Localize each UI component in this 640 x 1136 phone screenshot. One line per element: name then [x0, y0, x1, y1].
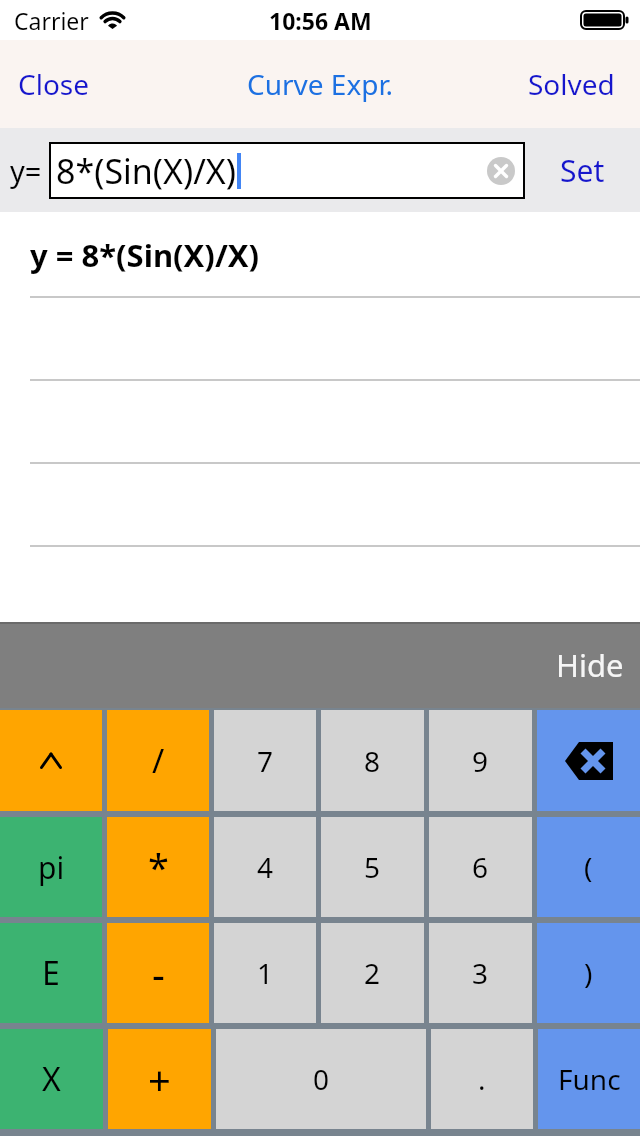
staticText: 4 [257, 848, 274, 886]
button[interactable]: E [0, 923, 102, 1023]
button[interactable]: - [107, 923, 209, 1023]
staticText: E [42, 951, 60, 995]
button[interactable]: pi [0, 817, 102, 917]
staticText: X [42, 1057, 61, 1101]
button[interactable]: Solved [524, 65, 619, 103]
button[interactable]: / [107, 710, 209, 811]
button[interactable]: 9 [429, 710, 532, 811]
button[interactable] [537, 710, 640, 811]
button[interactable]: 6 [429, 817, 532, 917]
staticText: pi [38, 847, 65, 888]
staticText: 5 [364, 848, 381, 886]
staticText: - [152, 946, 165, 1000]
staticText: Set [560, 150, 605, 191]
staticText: + [148, 1052, 171, 1106]
button[interactable]: + [108, 1029, 211, 1129]
button[interactable] [0, 710, 102, 811]
button[interactable]: y = 8*(Sin(X)/X) [0, 212, 640, 297]
button[interactable]: Func [538, 1029, 640, 1129]
button[interactable]: * [107, 817, 209, 917]
button[interactable]: 5 [321, 817, 424, 917]
button[interactable]: Hide [552, 644, 628, 686]
staticText: 3 [472, 954, 489, 992]
button[interactable]: ( [537, 817, 640, 917]
staticText: Hide [556, 644, 624, 686]
staticText: Close [18, 65, 90, 103]
staticText: Solved [528, 65, 615, 103]
staticText: 8*(Sin(X)/X) [56, 148, 236, 194]
button[interactable]: X [0, 1029, 103, 1129]
staticText: Func [558, 1060, 621, 1098]
staticText: / [152, 738, 165, 783]
staticText: 8 [364, 742, 381, 780]
button[interactable]: 7 [214, 710, 316, 811]
staticText: 1 [257, 954, 274, 992]
button[interactable]: 8*(Sin(X)/X) [49, 142, 525, 199]
button[interactable]: 3 [429, 923, 532, 1023]
staticText: ) [584, 954, 593, 992]
button[interactable]: 8 [321, 710, 424, 811]
button[interactable]: 2 [321, 923, 424, 1023]
staticText: Carrier [14, 5, 89, 36]
button[interactable] [487, 157, 515, 185]
button[interactable]: 0 [216, 1029, 426, 1129]
button[interactable]: . [431, 1029, 533, 1129]
staticText: 6 [472, 848, 489, 886]
button[interactable]: 1 [214, 923, 316, 1023]
staticText: 10:56 AM [269, 5, 372, 36]
staticText: y = 8*(Sin(X)/X) [30, 234, 260, 276]
button[interactable]: 4 [214, 817, 316, 917]
staticText: 2 [364, 954, 381, 992]
button[interactable]: Close [14, 65, 94, 103]
button[interactable]: ) [537, 923, 640, 1023]
staticText: 7 [257, 742, 274, 780]
staticText: ( [584, 848, 593, 886]
staticText: Curve Expr. [247, 65, 394, 103]
staticText: . [478, 1060, 486, 1098]
button[interactable]: Set [558, 148, 607, 193]
staticText: * [148, 841, 169, 893]
staticText: 9 [472, 742, 489, 780]
staticText: 0 [313, 1060, 330, 1098]
staticText: y= [10, 151, 42, 190]
